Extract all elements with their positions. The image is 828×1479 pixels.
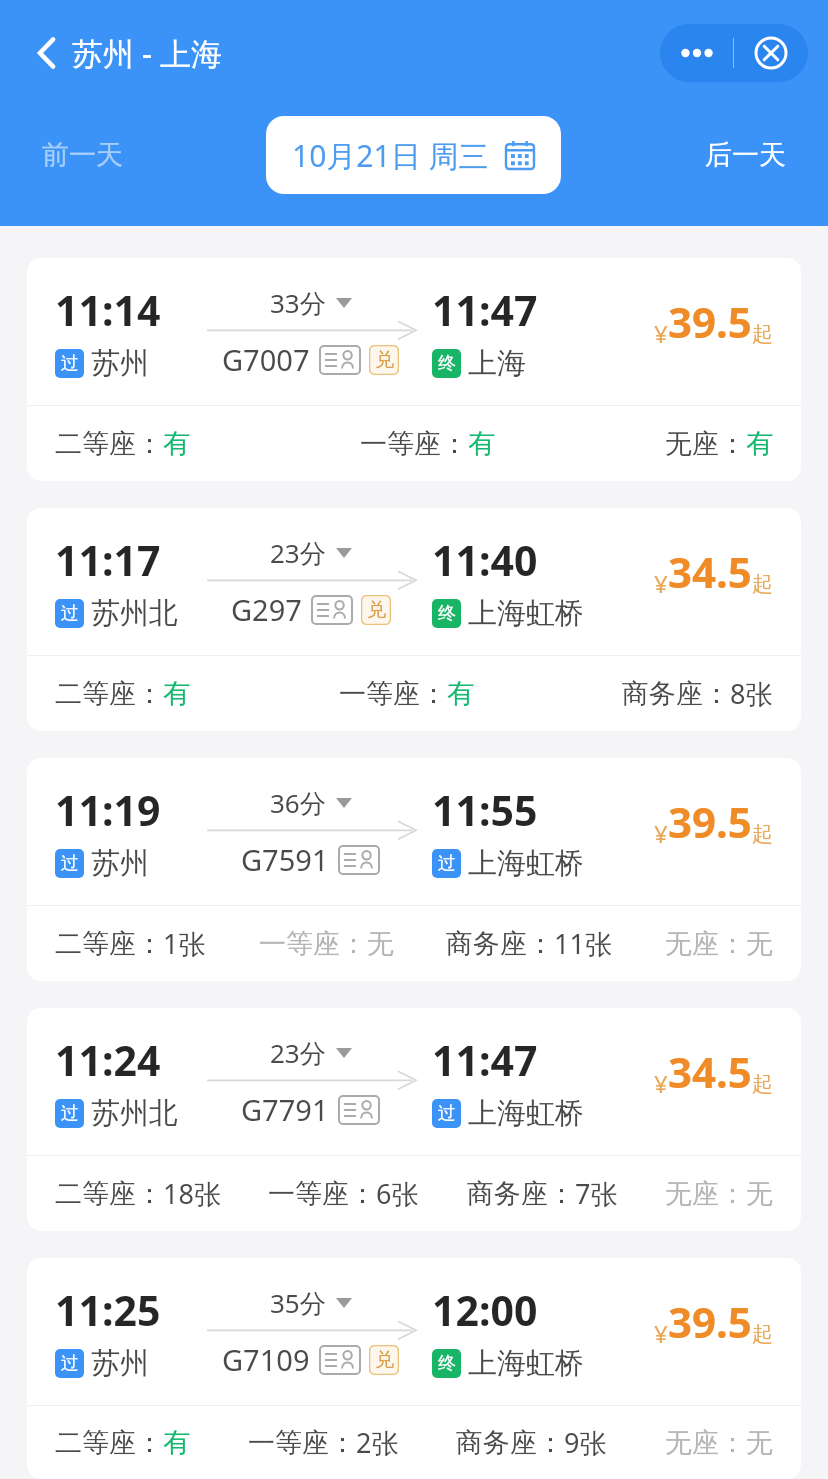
staticText: 二等座：	[55, 677, 163, 711]
staticText: 兑	[375, 1348, 394, 1372]
staticText: 11:40	[432, 532, 538, 588]
staticText: 11张	[554, 925, 612, 962]
staticText: 35分	[270, 1285, 326, 1321]
staticText: 有	[447, 677, 474, 711]
staticText: 过	[61, 602, 79, 625]
staticText: 后一天	[705, 138, 786, 172]
staticText: 无	[746, 1177, 773, 1211]
staticText: 兑	[375, 348, 394, 372]
staticText: 11:47	[432, 1032, 538, 1088]
staticText: 无	[367, 927, 394, 961]
staticText: 商务座：	[467, 1177, 575, 1211]
staticText: 34.5	[668, 1043, 752, 1100]
staticText: ¥	[654, 317, 668, 350]
staticText: 有	[163, 677, 190, 711]
staticText: 39.5	[668, 793, 752, 850]
button[interactable]: 后一天	[697, 130, 794, 180]
staticText: 二等座：	[55, 927, 163, 961]
button[interactable]: 前一天	[34, 130, 131, 180]
staticText: 有	[468, 427, 495, 461]
staticText: 前一天	[42, 138, 123, 172]
staticText: 上海虹桥	[468, 595, 584, 632]
staticText: 有	[746, 427, 773, 461]
staticText: 起	[752, 821, 773, 847]
staticText: 11:19	[55, 782, 161, 838]
button[interactable]: 返回	[34, 26, 225, 80]
staticText: 2张	[356, 1424, 399, 1461]
staticText: 终	[438, 1352, 456, 1375]
staticText: 无	[746, 1426, 773, 1460]
staticText: 8张	[730, 675, 773, 712]
staticText: G7791	[241, 1090, 329, 1129]
staticText: 无座：	[665, 927, 746, 961]
staticText: 有	[163, 1426, 190, 1460]
staticText: 一等座：	[339, 677, 447, 711]
staticText: 商务座：	[456, 1426, 564, 1460]
staticText: 过	[61, 1102, 79, 1125]
staticText: 过	[438, 852, 456, 875]
button[interactable]: 11:19	[27, 758, 801, 981]
staticText: 过	[438, 1102, 456, 1125]
staticText: 起	[752, 321, 773, 347]
staticText: 10月21日 周三	[292, 135, 489, 176]
staticText: 39.5	[668, 293, 752, 350]
staticText: 12:00	[432, 1282, 538, 1338]
staticText: 9张	[564, 1424, 607, 1461]
staticText: ¥	[654, 1317, 668, 1350]
staticText: 无座：	[665, 427, 746, 461]
staticText: 34.5	[668, 543, 752, 600]
button[interactable]: 菜单	[660, 24, 808, 82]
staticText: 二等座：	[55, 1177, 163, 1211]
staticText: 二等座：	[55, 1426, 163, 1460]
staticText: 一等座：	[259, 927, 367, 961]
staticText: 无座：	[665, 1177, 746, 1211]
staticText: 39.5	[668, 1293, 752, 1350]
staticText: 商务座：	[446, 927, 554, 961]
staticText: ¥	[654, 1067, 668, 1100]
staticText: 一等座：	[360, 427, 468, 461]
staticText: 上海	[468, 345, 526, 382]
staticText: 过	[61, 852, 79, 875]
staticText: 终	[438, 352, 456, 375]
button[interactable]: 11:17	[27, 508, 801, 731]
staticText: 23分	[270, 535, 326, 571]
staticText: 起	[752, 1321, 773, 1347]
staticText: 苏州北	[91, 1095, 178, 1132]
staticText: 起	[752, 1071, 773, 1097]
staticText: 23分	[270, 1035, 326, 1071]
staticText: 无	[746, 927, 773, 961]
staticText: 7张	[575, 1175, 618, 1212]
staticText: 11:17	[55, 532, 161, 588]
button[interactable]: 11:14	[27, 258, 801, 481]
button[interactable]: 11:25	[27, 1258, 801, 1479]
staticText: 上海虹桥	[468, 845, 584, 882]
staticText: 一等座：	[268, 1177, 376, 1211]
staticText: 苏州北	[91, 595, 178, 632]
staticText: 18张	[163, 1175, 221, 1212]
staticText: 11:24	[55, 1032, 161, 1088]
staticText: G7109	[222, 1340, 310, 1379]
staticText: ¥	[654, 567, 668, 600]
staticText: 36分	[270, 785, 326, 821]
staticText: 有	[163, 427, 190, 461]
staticText: 过	[61, 352, 79, 375]
staticText: 终	[438, 602, 456, 625]
staticText: 商务座：	[622, 677, 730, 711]
staticText: 苏州 - 上海	[72, 32, 223, 74]
staticText: 过	[61, 1352, 79, 1375]
staticText: 11:14	[55, 282, 161, 338]
staticText: G297	[231, 590, 302, 629]
staticText: G7591	[241, 840, 329, 879]
staticText: 11:55	[432, 782, 538, 838]
staticText: 11:25	[55, 1282, 161, 1338]
staticText: 11:47	[432, 282, 538, 338]
staticText: 起	[752, 571, 773, 597]
staticText: 二等座：	[55, 427, 163, 461]
staticText: 苏州	[91, 845, 149, 882]
staticText: 苏州	[91, 345, 149, 382]
staticText: 上海虹桥	[468, 1345, 584, 1382]
button[interactable]: 11:24	[27, 1008, 801, 1231]
staticText: 33分	[270, 285, 326, 321]
button[interactable]: 10月21日 周三	[266, 116, 561, 194]
staticText: 兑	[367, 598, 386, 622]
